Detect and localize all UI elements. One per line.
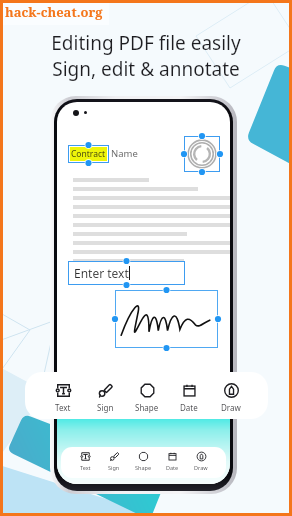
staticText: Editing PDF file easily [51, 30, 241, 56]
button[interactable]: Draw [189, 451, 213, 475]
button[interactable]: Shape [131, 451, 155, 475]
button[interactable]: Shape [130, 382, 164, 417]
button[interactable]: Text [46, 382, 80, 417]
button[interactable]: Text [73, 451, 97, 475]
staticText: Text [80, 464, 91, 471]
staticText: Date [180, 402, 198, 413]
button[interactable]: Date [160, 451, 184, 475]
staticText: Contract [71, 148, 106, 160]
staticText: Name [111, 147, 138, 160]
staticText: hack-cheat.org [5, 3, 103, 21]
button[interactable]: Sign [102, 451, 126, 475]
staticText: Draw [221, 402, 241, 413]
staticText: Sign, edit & annotate [52, 56, 240, 82]
button[interactable]: Date [172, 382, 206, 417]
staticText: Sign [97, 402, 114, 413]
staticText: Date [166, 464, 179, 471]
staticText: Shape [135, 464, 151, 471]
staticText: Sign [108, 464, 120, 471]
staticText: Shape [135, 402, 159, 413]
staticText: Enter text [74, 265, 129, 281]
button[interactable]: Draw [214, 382, 248, 417]
button[interactable]: Sign [88, 382, 122, 417]
staticText: Text [55, 402, 71, 413]
staticText: Draw [194, 464, 208, 471]
